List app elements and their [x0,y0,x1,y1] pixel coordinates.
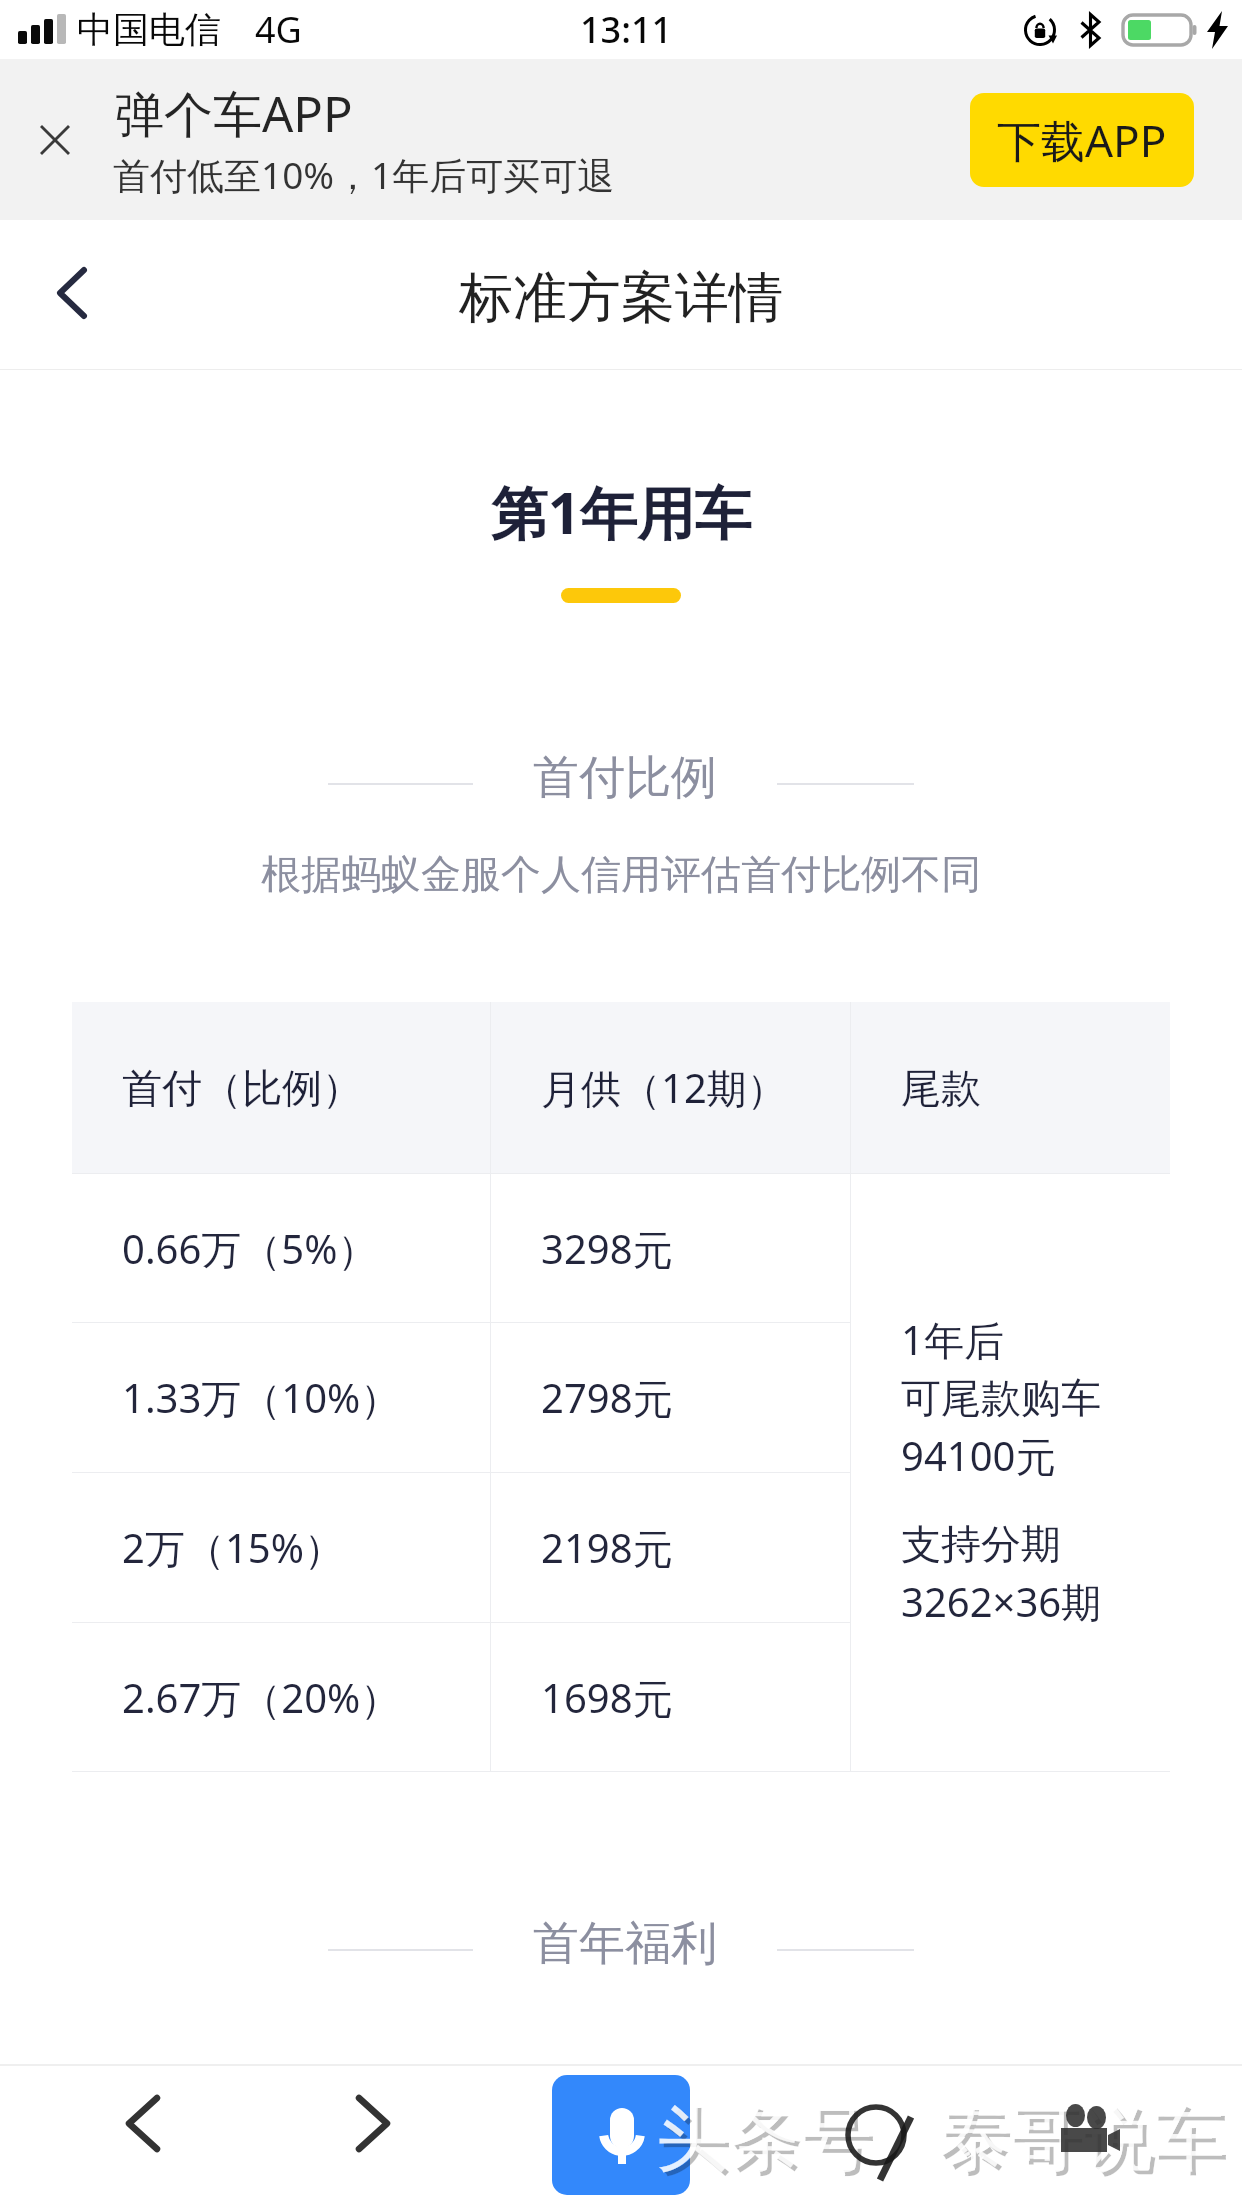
staticText: 泰哥说车 [941,2098,1229,2189]
staticText: 月供（12期） [541,1060,787,1115]
staticText: 泰哥说车 [937,2094,1225,2185]
button[interactable]: 1698元 [491,1623,850,1772]
staticText: 1.33万（10%） [122,1370,401,1425]
button[interactable]: 2.67万（20%） [72,1623,490,1772]
staticText: 下载APP [997,110,1167,170]
button[interactable]: 前进 [328,2078,418,2168]
button[interactable]: 0.66万（5%） [72,1174,490,1322]
staticText: 第1年用车 [0,473,1242,551]
button[interactable]: 下载APP [970,93,1194,187]
staticText: 1698元 [541,1670,673,1725]
button[interactable]: 3298元 [491,1174,850,1322]
staticText: 尾款 [901,1063,981,1113]
staticText: 根据蚂蚁金服个人信用评估首付比例不同 [0,849,1242,899]
staticText: 3298元 [541,1221,673,1276]
staticText: 标准方案详情 [0,264,1242,332]
staticText: 1年后 可尾款购车 94100元 [901,1312,1101,1483]
button[interactable]: 2万（15%） [72,1473,490,1622]
staticText: 2万（15%） [122,1520,344,1575]
button[interactable]: 1.33万（10%） [72,1323,490,1472]
staticText: 中国电信 [77,7,221,52]
button[interactable]: 语音搜索 [552,2075,690,2195]
staticText: 弹个车APP [115,80,353,147]
staticText: 头条号 [660,2098,876,2189]
button[interactable]: 2798元 [491,1323,850,1472]
staticText: 首付（比例） [122,1063,362,1113]
staticText: 头条号 [656,2094,872,2185]
staticText: 2798元 [541,1370,673,1425]
staticText: 4G [255,5,302,54]
staticText: 支持分期 3262×36期 [901,1519,1102,1629]
staticText: 2198元 [541,1520,673,1575]
staticText: 首年福利 [533,1915,717,1973]
staticText: 2.67万（20%） [122,1670,401,1725]
button[interactable]: 关闭 [24,109,86,171]
button[interactable]: 返回 [32,253,112,333]
staticText: 13:11 [580,5,673,54]
button[interactable]: 后退 [98,2078,188,2168]
button[interactable]: 2198元 [491,1473,850,1622]
staticText: 0.66万（5%） [122,1221,378,1276]
staticText: 首付比例 [533,749,717,807]
staticText: 首付低至10%，1年后可买可退 [113,149,615,200]
